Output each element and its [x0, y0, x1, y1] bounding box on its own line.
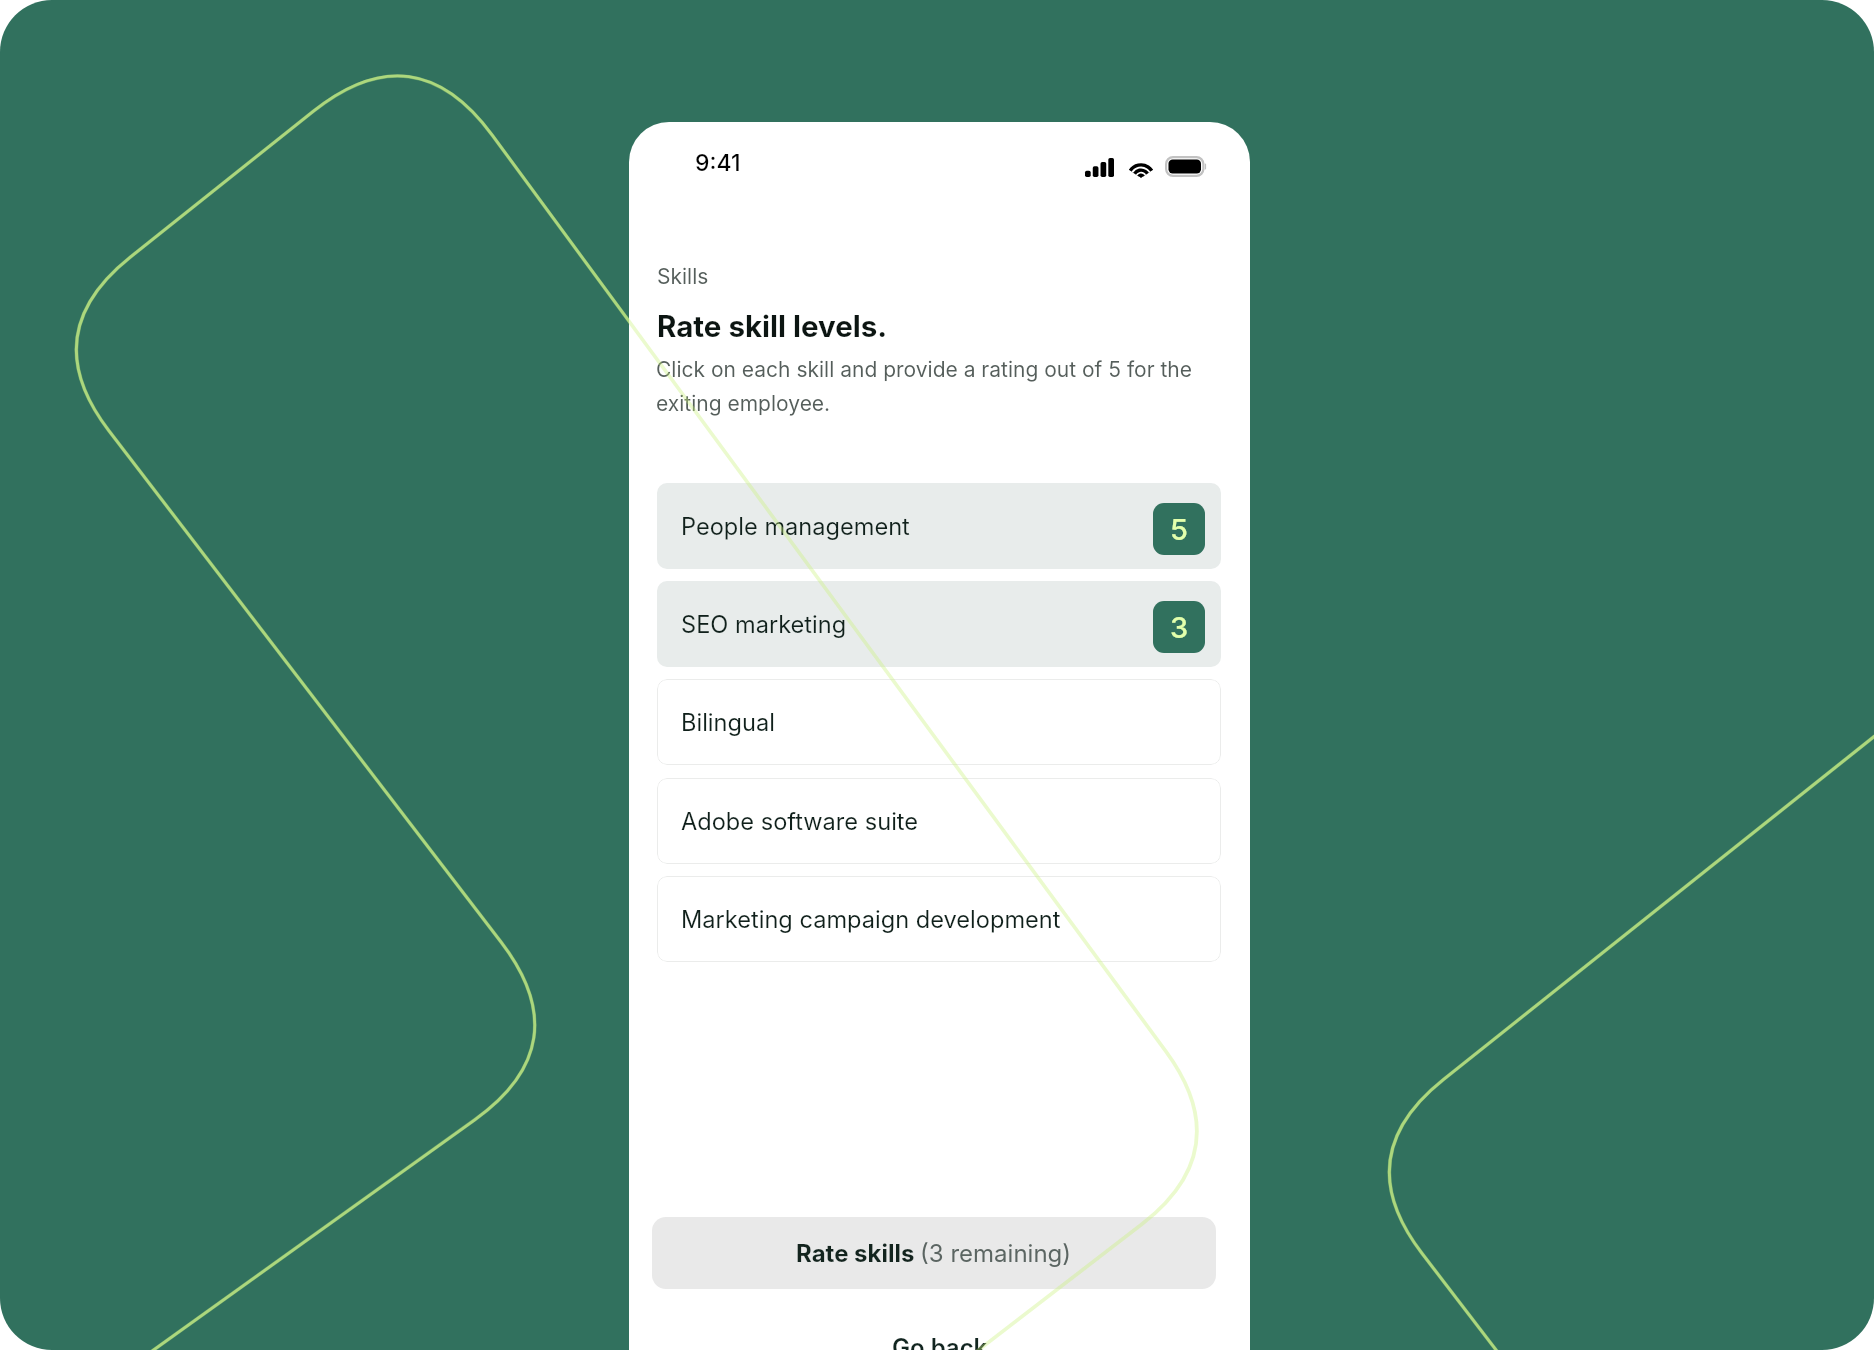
staticText: 9:41	[695, 149, 741, 177]
button[interactable]: Go back	[629, 1333, 1250, 1350]
staticText: 3	[1170, 610, 1189, 645]
staticText: 5	[1170, 512, 1188, 547]
button[interactable]: Marketing campaign development	[657, 876, 1221, 962]
button[interactable]: Rate skills (3 remaining)	[652, 1217, 1216, 1289]
staticText: Skills	[657, 264, 709, 289]
staticText: Go back	[892, 1333, 988, 1350]
staticText: Rate skills (3 remaining)	[796, 1239, 1072, 1268]
button[interactable]: SEO marketing	[657, 581, 1221, 667]
staticText: Bilingual	[681, 708, 775, 737]
staticText: Marketing campaign development	[681, 905, 1061, 934]
staticText: Click on each skill and provide a rating…	[656, 357, 1209, 416]
button[interactable]: People management	[657, 483, 1221, 569]
staticText: Adobe software suite	[681, 807, 919, 836]
staticText: People management	[681, 512, 910, 541]
button[interactable]: Bilingual	[657, 679, 1221, 765]
button[interactable]: Adobe software suite	[657, 778, 1221, 864]
staticText: Rate skill levels.	[657, 308, 888, 344]
staticText: SEO marketing	[681, 610, 847, 639]
